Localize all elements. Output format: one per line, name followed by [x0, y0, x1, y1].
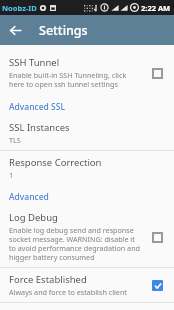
staticText: Always and force to establish client — [9, 287, 127, 297]
button[interactable]: Log Debug — [0, 206, 174, 267]
staticText: Enable built-in SSH Tunneling, click her… — [9, 70, 140, 89]
button[interactable]: Force Established — [0, 268, 174, 302]
staticText: Settings — [39, 22, 88, 39]
staticText: TLS — [9, 135, 21, 145]
staticText: Log Debug — [9, 211, 58, 224]
staticText: Force Established — [9, 273, 87, 286]
button[interactable]: SSL Instances — [0, 116, 174, 150]
button[interactable]: Checked — [146, 274, 168, 296]
staticText: Advanced — [9, 191, 49, 203]
button[interactable]: SSH Tunnel — [0, 51, 174, 94]
staticText: Noobz-ID — [2, 3, 37, 13]
button[interactable]: Unchecked — [146, 62, 168, 84]
staticText: SSH Tunnel — [9, 56, 60, 69]
staticText: Response Correction — [9, 156, 102, 169]
button[interactable]: Back — [0, 15, 30, 45]
staticText: Enable log debug send and response socke… — [9, 225, 140, 262]
staticText: Advanced SSL — [9, 101, 65, 113]
button[interactable]: Response Correction — [0, 151, 174, 185]
staticText: 2:22 AM — [141, 3, 171, 13]
staticText: 1 — [9, 170, 14, 180]
button[interactable]: Unchecked — [146, 226, 168, 248]
staticText: SSL Instances — [9, 121, 70, 134]
